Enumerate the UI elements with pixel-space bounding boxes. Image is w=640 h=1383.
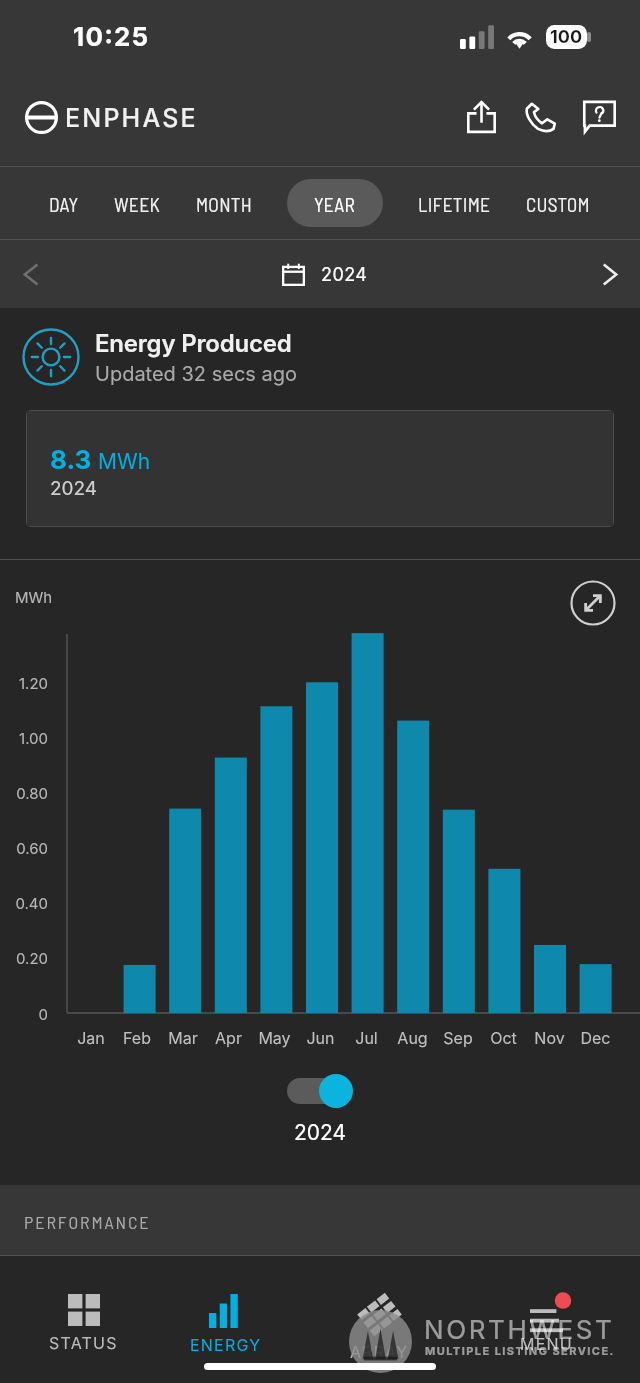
button[interactable]: Share — [458, 93, 504, 139]
staticText: DAY — [49, 192, 79, 215]
staticText: Feb — [123, 1028, 151, 1047]
staticText: STATUS — [49, 1333, 118, 1352]
staticText: Jul — [355, 1028, 378, 1047]
button[interactable]: MENU — [486, 1294, 606, 1368]
staticText: YEAR — [314, 192, 356, 215]
button[interactable]: Help — [576, 93, 622, 139]
staticText: CUSTOM — [526, 192, 590, 215]
staticText: 0.40 — [15, 894, 48, 912]
staticText: 10:25 — [73, 21, 150, 52]
button[interactable]: Energy Produced — [22, 328, 640, 386]
button[interactable]: Enphase home — [25, 101, 198, 134]
staticText: Mar — [168, 1028, 198, 1047]
staticText: WEEK — [114, 192, 161, 215]
button[interactable]: Toggle year — [287, 1074, 353, 1108]
button[interactable]: WEEK — [114, 179, 161, 227]
staticText: Aug — [397, 1028, 428, 1047]
button[interactable]: MONTH — [196, 179, 253, 227]
button[interactable]: Next year — [586, 240, 634, 308]
staticText: NORTHWEST — [424, 1314, 615, 1345]
staticText: 1.20 — [18, 674, 48, 692]
button[interactable]: 2024 — [282, 263, 368, 286]
staticText: ARRAY — [350, 1342, 409, 1361]
staticText: ENERGY — [190, 1335, 262, 1354]
staticText: MONTH — [196, 192, 253, 215]
button[interactable]: LIFETIME — [418, 179, 491, 227]
button[interactable]: CUSTOM — [526, 179, 590, 227]
staticText: 0.60 — [16, 839, 48, 857]
staticText: Energy Produced — [95, 329, 292, 358]
button[interactable]: DAY — [49, 179, 79, 227]
staticText: 2024 — [321, 264, 368, 286]
button[interactable]: Expand chart — [564, 574, 622, 632]
staticText: Updated 32 secs ago — [95, 362, 297, 386]
staticText: Dec — [580, 1028, 611, 1047]
button[interactable]: ENERGY — [166, 1294, 286, 1368]
staticText: 0 — [38, 1005, 48, 1023]
button[interactable]: Call support — [517, 93, 563, 139]
staticText: MULTIPLE LISTING SERVICE. — [425, 1344, 615, 1357]
staticText: MWh — [15, 588, 53, 606]
staticText: 1.00 — [19, 729, 48, 747]
staticText: LIFETIME — [418, 192, 491, 215]
staticText: Apr — [215, 1028, 242, 1047]
staticText: MENU — [520, 1334, 573, 1353]
staticText: 2024 — [50, 477, 98, 500]
staticText: 8.3 — [50, 444, 92, 475]
staticText: Sep — [443, 1028, 473, 1047]
button[interactable]: 8.3 — [27, 411, 613, 526]
staticText: 2024 — [294, 1120, 347, 1145]
button[interactable]: PERFORMANCE — [0, 1185, 640, 1255]
staticText: ENPHASE — [65, 103, 198, 133]
button[interactable]: ARRAY — [319, 1294, 439, 1368]
button[interactable]: YEAR — [287, 179, 383, 227]
staticText: 0.20 — [15, 949, 48, 967]
staticText: Nov — [534, 1028, 565, 1047]
staticText: Jan — [77, 1028, 105, 1047]
button[interactable]: STATUS — [23, 1294, 143, 1368]
staticText: MWh — [98, 449, 151, 474]
staticText: PERFORMANCE — [24, 1211, 151, 1233]
staticText: 0.80 — [16, 784, 48, 802]
staticText: May — [258, 1028, 291, 1047]
staticText: Oct — [490, 1028, 517, 1047]
button[interactable]: Previous year — [6, 240, 54, 308]
staticText: 100 — [550, 26, 583, 48]
staticText: Jun — [306, 1028, 335, 1047]
